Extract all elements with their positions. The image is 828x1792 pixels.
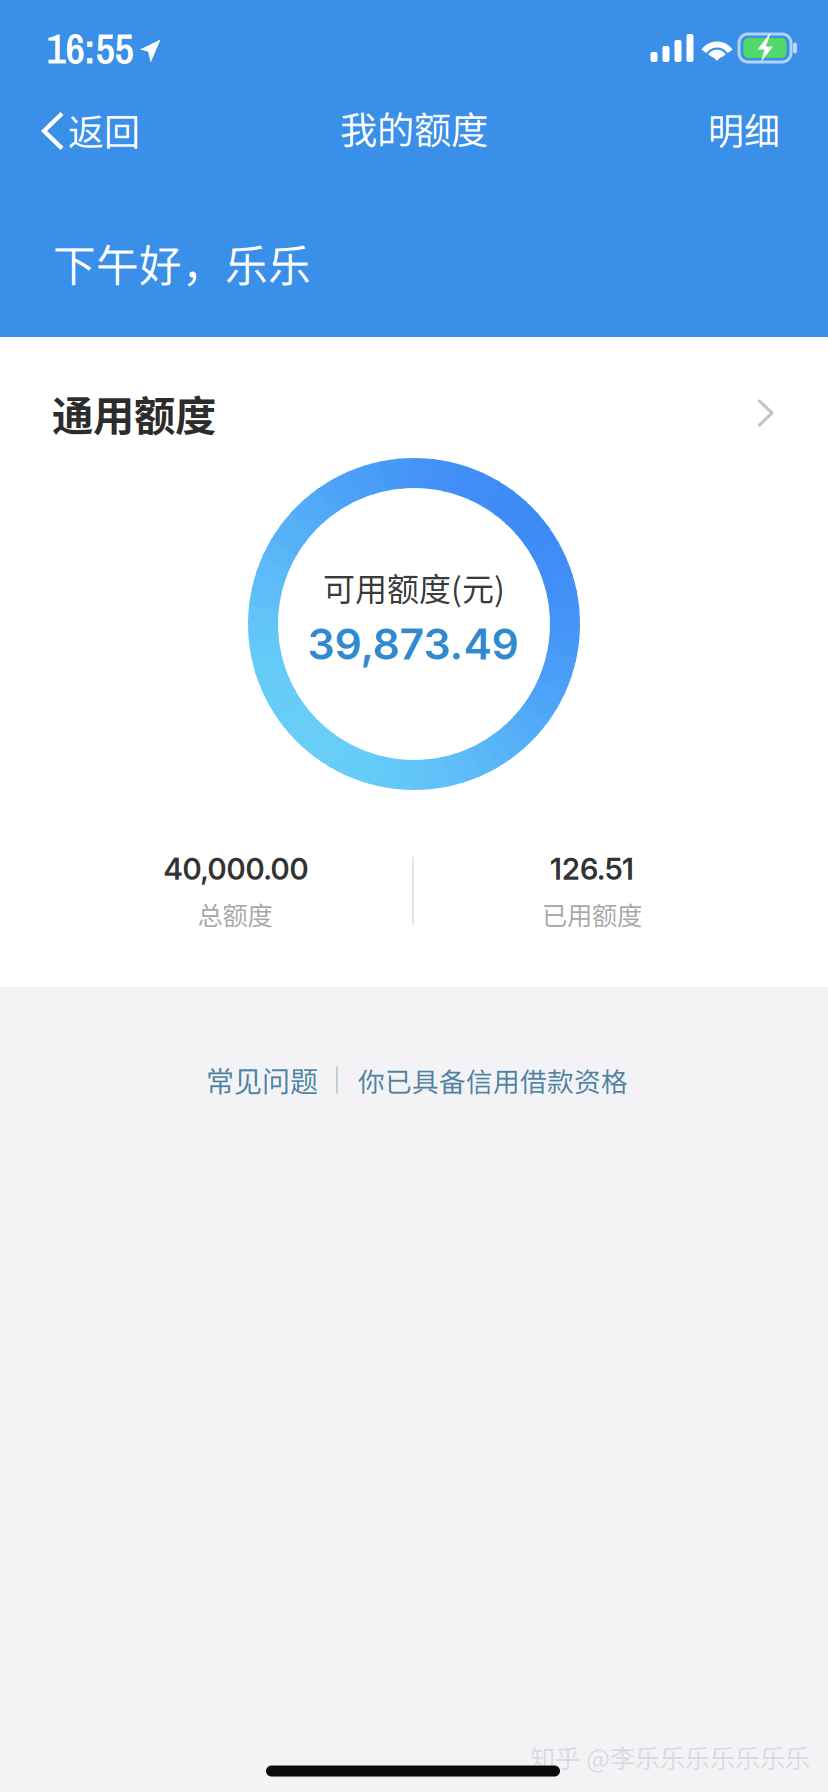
staticText: 你已具备信用借款资格 — [358, 1061, 628, 1099]
staticText: 16:55 — [46, 19, 133, 77]
staticText: 可用额度(元) — [323, 564, 505, 610]
staticText: 通用额度 — [52, 383, 216, 443]
staticText: 已用额度 — [542, 896, 642, 932]
button[interactable]: 常见问题 — [191, 1049, 332, 1111]
button[interactable]: 你已具备信用借款资格 — [346, 1049, 640, 1111]
button[interactable]: 通用额度 — [0, 354, 828, 472]
staticText: 返回 — [68, 104, 140, 156]
staticText: 常见问题 — [206, 1060, 318, 1100]
staticText: 40,000.00 — [163, 851, 308, 887]
button[interactable]: 明细 — [679, 87, 809, 171]
button[interactable]: 返回 — [0, 89, 166, 173]
staticText: 知乎 @李乐乐乐乐乐乐乐 — [530, 1739, 810, 1775]
staticText: 126.51 — [550, 851, 634, 887]
staticText: 下午好，乐乐 — [53, 232, 311, 294]
staticText: 我的额度 — [340, 101, 488, 155]
staticText: 39,873.49 — [307, 618, 518, 670]
staticText: 总额度 — [197, 896, 272, 932]
staticText: 明细 — [708, 103, 780, 155]
